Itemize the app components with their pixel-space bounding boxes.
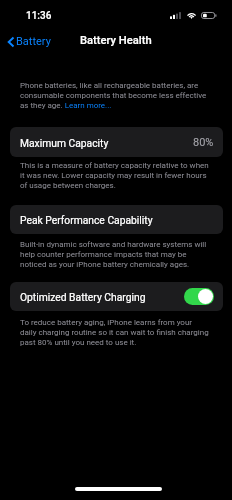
button[interactable]: Peak Performance Capability: [10, 205, 223, 234]
button[interactable]: Optimized Battery Charging: [10, 282, 223, 311]
button[interactable]: Battery: [4, 33, 57, 50]
staticText: This is a measure of battery capacity re…: [20, 160, 210, 190]
staticText: Phone batteries, like all rechargeable b…: [20, 80, 210, 110]
button[interactable]: Optimized Battery Charging toggle: [184, 288, 214, 305]
staticText: To reduce battery aging, iPhone learns f…: [20, 317, 210, 347]
staticText: Peak Performance Capability: [20, 214, 153, 226]
staticText: Battery: [16, 35, 51, 48]
staticText: Battery Health: [80, 34, 152, 47]
staticText: Maximum Capacity: [20, 137, 109, 149]
button[interactable]: Maximum Capacity: [10, 127, 223, 157]
staticText: Built-in dynamic software and hardware s…: [20, 239, 210, 269]
staticText: 80%: [193, 136, 214, 149]
staticText: Optimized Battery Charging: [20, 291, 146, 303]
staticText: 11:36: [26, 10, 52, 22]
